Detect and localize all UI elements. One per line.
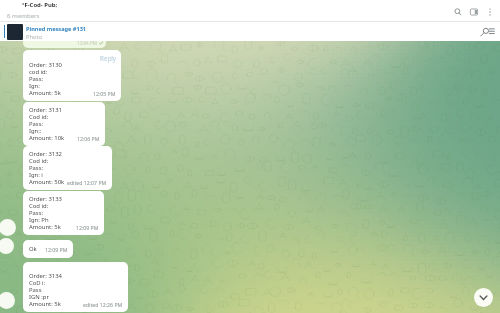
staticText: Pass: — [29, 209, 44, 217]
button[interactable]: Pinned message #131 — [0, 22, 500, 41]
staticText: CoD i: — [29, 279, 46, 287]
staticText: Order: 3131 — [29, 106, 62, 114]
staticText: Reply — [29, 54, 116, 62]
staticText: Ign: i — [29, 171, 43, 179]
staticText: 12:09 PM — [45, 246, 68, 253]
staticText: Ign:: — [29, 127, 42, 135]
staticText: edited 12:07 PM — [67, 179, 107, 186]
staticText: Order: 3134 — [29, 272, 62, 280]
staticText: Pass: — [29, 75, 44, 83]
staticText: Order: 3132 — [29, 150, 62, 158]
staticText: Cod id: — [29, 157, 49, 165]
staticText: Pinned message #131 — [26, 25, 87, 33]
button[interactable]: Order: 3131 — [23, 102, 105, 146]
staticText: Photo — [26, 33, 43, 41]
staticText: Amount: 5k — [29, 300, 61, 308]
staticText: °F-Cod- Pub; — [22, 1, 58, 9]
button[interactable]: Scroll to bottom — [474, 288, 493, 307]
staticText: Ign: — [29, 82, 40, 90]
button[interactable]: Ok — [23, 240, 73, 258]
staticText: Amount: 10k — [29, 134, 65, 142]
staticText: 12:09 PM — [76, 224, 99, 231]
button[interactable]: Reply — [23, 50, 121, 101]
button[interactable]: Sidebar — [466, 4, 482, 20]
staticText: Order: 3133 — [29, 195, 62, 203]
staticText: Cod id: — [29, 202, 49, 210]
staticText: IGN :pr — [29, 293, 49, 301]
staticText: cod id: — [29, 68, 48, 76]
staticText: edited 12:26 PM — [83, 301, 123, 308]
staticText: 12:04 PM — [77, 40, 97, 46]
staticText: Cod id: — [29, 113, 49, 121]
button[interactable]: Search — [450, 4, 466, 20]
staticText: Ign: Ph — [29, 216, 49, 224]
staticText: 6 members — [7, 11, 40, 19]
staticText: Pass — [29, 286, 42, 294]
staticText: 12:06 PM — [77, 135, 100, 142]
button[interactable]: Order: 3134 — [23, 262, 128, 312]
staticText: 12:05 PM — [93, 90, 116, 97]
staticText: Pass: — [29, 164, 44, 172]
button[interactable]: 12:04 PM — [23, 26, 106, 48]
staticText: Order: 3130 — [29, 61, 62, 69]
staticText: Amount: 5k — [29, 223, 61, 231]
button[interactable]: More options — [482, 4, 498, 20]
staticText: Amount: 50k — [29, 178, 65, 186]
button[interactable]: Order: 3132 — [23, 146, 112, 190]
staticText: Amount: 5k — [29, 89, 61, 97]
button[interactable]: Order: 3133 — [23, 191, 104, 235]
staticText: Ok — [29, 245, 37, 253]
button[interactable]: Pinned messages list — [482, 25, 495, 38]
staticText: Pass: — [29, 120, 44, 128]
